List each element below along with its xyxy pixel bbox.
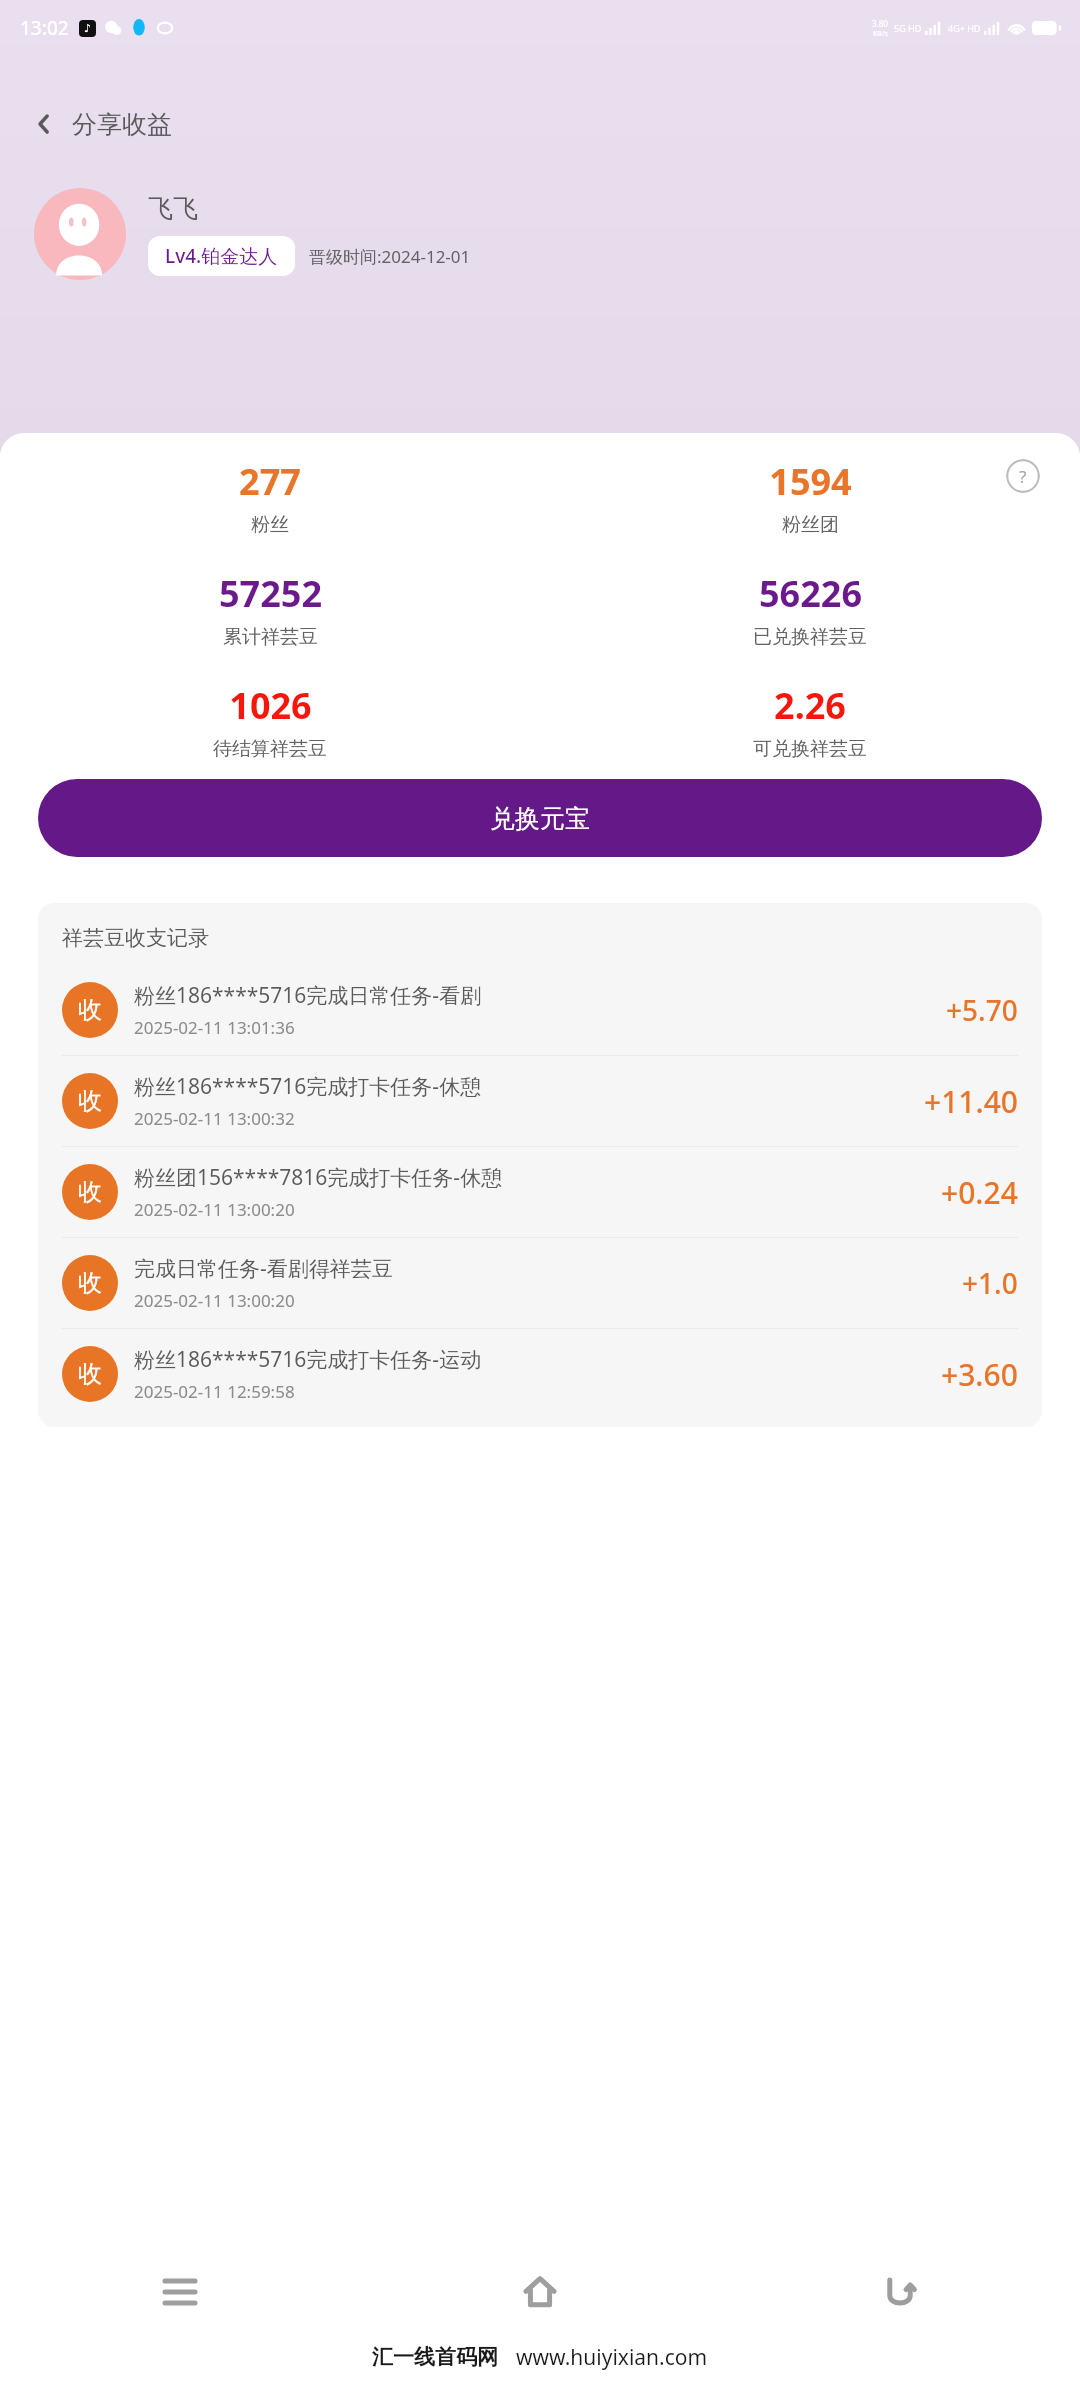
button[interactable]: 收 [38,1147,1042,1237]
staticText: 57252 [219,569,322,618]
staticText: 已兑换祥芸豆 [753,625,867,649]
staticText: 待结算祥芸豆 [213,737,327,761]
button[interactable]: 2.26 [540,681,1080,761]
staticText: ? [1019,465,1027,488]
staticText: 祥芸豆收支记录 [62,925,209,951]
button[interactable]: 收 [38,965,1042,1055]
staticText: 2025-02-11 13:00:20 [134,1198,295,1221]
staticText: 收 [78,1268,102,1298]
staticText: +11.40 [924,1081,1018,1122]
staticText: 13:02 [20,15,69,41]
staticText: 兑换元宝 [490,803,590,834]
staticText: +3.60 [941,1354,1018,1395]
button[interactable]: 277 [0,457,540,537]
button[interactable]: 1594 [540,457,1080,537]
staticText: +1.0 [962,1264,1018,1302]
button[interactable]: 收 [38,1329,1042,1419]
staticText: 5G HD [894,22,922,34]
staticText: www.huiyixian.com [516,2343,708,2372]
staticText: 可兑换祥芸豆 [753,737,867,761]
button[interactable]: 收 [38,1238,1042,1328]
staticText: KB/s [873,29,888,39]
staticText: 完成日常任务-看剧得祥芸豆 [134,1254,393,1283]
staticText: 1594 [769,457,852,506]
staticText: 2025-02-11 12:59:58 [134,1380,295,1403]
staticText: 277 [239,457,301,506]
staticText: 2.26 [774,681,846,730]
staticText: 粉丝186****5716完成日常任务-看剧 [134,981,482,1010]
staticText: 收 [78,1086,102,1116]
button[interactable]: 56226 [540,569,1080,649]
staticText: 收 [78,1359,102,1389]
staticText: 56226 [759,569,862,618]
staticText: 晋级时间:2024-12-01 [309,245,471,268]
staticText: 飞飞 [148,193,198,224]
staticText: 2025-02-11 13:00:20 [134,1289,295,1312]
staticText: ♪ [84,22,92,35]
staticText: +5.70 [946,991,1018,1029]
staticText: 2025-02-11 13:01:36 [134,1016,295,1039]
staticText: 粉丝186****5716完成打卡任务-运动 [134,1345,482,1374]
button[interactable]: Help [1006,459,1040,493]
staticText: 1026 [229,681,312,730]
staticText: Lv4.铂金达人 [165,243,278,269]
staticText: 2025-02-11 13:00:32 [134,1107,295,1130]
staticText: 汇一线首码网 [372,2344,498,2370]
button[interactable]: Lv4.铂金达人 [148,236,295,276]
button[interactable]: 兑换元宝 [38,779,1042,857]
staticText: 收 [78,995,102,1025]
staticText: 收 [78,1177,102,1207]
button[interactable]: Back [720,2250,1080,2334]
staticText: 分享收益 [72,109,172,140]
staticText: 粉丝团 [782,513,839,537]
staticText: 3.80 [872,18,888,29]
button[interactable]: 1026 [0,681,540,761]
staticText: 4G+ HD [948,22,981,34]
staticText: 粉丝186****5716完成打卡任务-休憩 [134,1072,482,1101]
button[interactable]: Back [22,102,66,146]
button[interactable]: Recents [0,2250,360,2334]
button[interactable]: 收 [38,1056,1042,1146]
staticText: +0.24 [941,1172,1018,1213]
staticText: 粉丝团156****7816完成打卡任务-休憩 [134,1163,503,1192]
staticText: 粉丝 [251,513,289,537]
staticText: 累计祥芸豆 [223,625,318,649]
button[interactable]: Home [360,2250,720,2334]
button[interactable]: 57252 [0,569,540,649]
